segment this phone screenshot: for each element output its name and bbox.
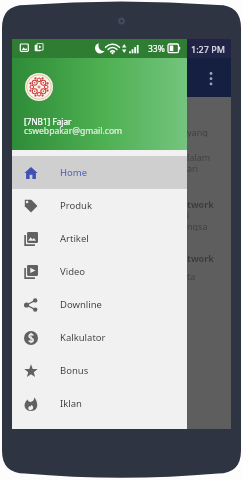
button[interactable]: Video xyxy=(12,255,187,288)
staticText: 33% xyxy=(148,43,165,55)
button[interactable]: Kalkulator xyxy=(12,321,187,354)
staticText: twork xyxy=(187,252,214,263)
staticText: ta xyxy=(187,270,196,281)
staticText: Produk xyxy=(60,199,93,212)
staticText: lalam xyxy=(187,151,211,162)
button[interactable]: Home xyxy=(12,156,187,189)
button[interactable]: Bonus xyxy=(12,354,187,387)
button[interactable]: Iklan xyxy=(12,387,187,420)
button[interactable]: Artikel xyxy=(12,222,187,255)
staticText: twork xyxy=(187,198,214,209)
staticText: [7NB1] Fajar xyxy=(24,116,72,127)
staticText: yang xyxy=(187,126,208,137)
staticText: Bonus xyxy=(60,364,89,377)
staticText: Artikel xyxy=(60,232,89,245)
staticText: cswebpakar@gmail.com xyxy=(24,125,123,137)
staticText: Iklan xyxy=(60,397,82,410)
button[interactable]: Downline xyxy=(12,288,187,321)
staticText: i xyxy=(187,209,190,220)
button[interactable]: Produk xyxy=(12,189,187,222)
staticText: Video xyxy=(60,265,86,278)
staticText: Downline xyxy=(60,298,102,311)
staticText: ari xyxy=(187,162,199,173)
staticText: Kalkulator xyxy=(60,331,106,344)
staticText: Home xyxy=(60,166,88,179)
button[interactable]: More options xyxy=(203,70,219,86)
staticText: ngsa xyxy=(187,220,208,231)
staticText: 1:27 PM xyxy=(191,43,225,55)
